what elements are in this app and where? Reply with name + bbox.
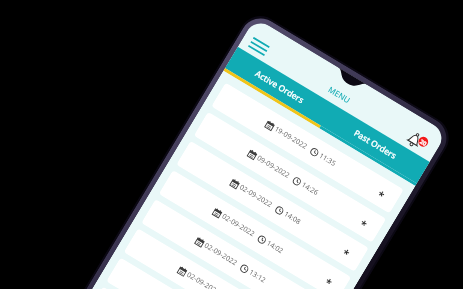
staticText: * (339, 245, 352, 261)
staticText: 14:08 (282, 209, 302, 227)
staticText: 14:26 (299, 180, 320, 198)
staticText: 19-09-2022 (272, 124, 309, 152)
button[interactable]: 02-09-2022 (124, 228, 316, 289)
button[interactable]: 02-09-2022 (159, 170, 351, 289)
button[interactable]: 02-09-2022 (141, 199, 334, 289)
staticText: MENU (327, 84, 353, 105)
button[interactable]: Past Orders (321, 104, 430, 183)
staticText: 11:35 (317, 151, 337, 169)
button[interactable]: 01-09-2022 (89, 286, 281, 289)
staticText: 13:12 (247, 267, 267, 285)
button[interactable]: Active Orders (225, 47, 334, 126)
staticText: Active Orders (253, 68, 306, 106)
staticText: 20 (418, 138, 428, 148)
staticText: 02-09-2022 (237, 182, 274, 210)
button[interactable]: 02-09-2022 (176, 141, 369, 272)
staticText: 02-09-2022 (185, 270, 222, 289)
staticText: * (322, 274, 335, 289)
button[interactable]: 01-09-2022 (106, 257, 299, 289)
staticText: 02-09-2022 (202, 241, 239, 268)
button[interactable]: 09-09-2022 (194, 112, 386, 243)
staticText: 14:02 (264, 238, 285, 256)
button[interactable]: Open navigation menu (247, 35, 271, 58)
button[interactable]: 19-09-2022 (211, 82, 404, 214)
staticText: 02-09-2022 (220, 212, 257, 239)
staticText: * (357, 216, 370, 232)
staticText: Past Orders (351, 127, 399, 162)
staticText: * (374, 187, 387, 203)
button[interactable]: Notifications (403, 128, 431, 155)
staticText: 09-09-2022 (255, 153, 292, 181)
